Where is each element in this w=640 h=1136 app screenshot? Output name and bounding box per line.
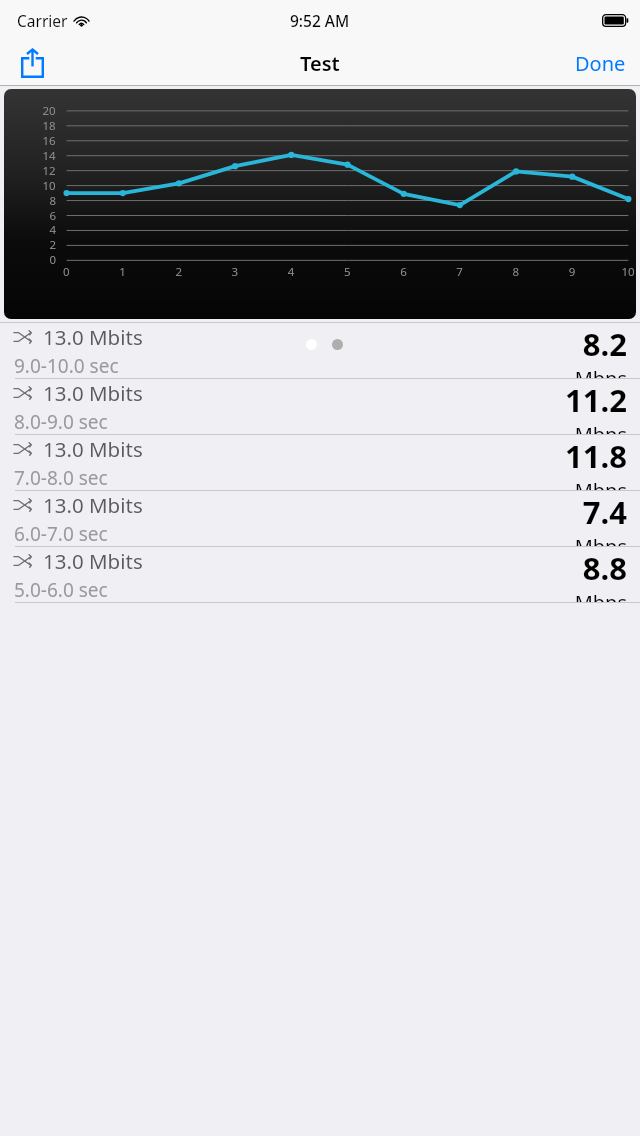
button[interactable]: 13.0 Mbits <box>0 379 640 434</box>
staticText: Mbps <box>574 533 627 546</box>
staticText: 13.0 Mbits <box>43 491 143 519</box>
button[interactable]: 13.0 Mbits <box>0 491 640 546</box>
staticText: 9:52 AM <box>290 10 350 31</box>
staticText: Carrier <box>17 10 68 31</box>
staticText: 9.0-10.0 sec <box>14 353 119 378</box>
staticText: 13.0 Mbits <box>43 547 143 575</box>
staticText: 7.4 <box>582 491 627 533</box>
staticText: 8.8 <box>582 547 627 589</box>
staticText: 6.0-7.0 sec <box>14 521 108 546</box>
button[interactable]: Share <box>10 41 54 85</box>
staticText: Test <box>300 50 340 77</box>
staticText: Mbps <box>574 477 627 490</box>
button[interactable]: 13.0 Mbits <box>0 323 640 378</box>
staticText: Done <box>575 50 626 77</box>
staticText: 13.0 Mbits <box>43 323 143 351</box>
button[interactable]: Done <box>569 44 632 83</box>
staticText: Mbps <box>574 421 627 434</box>
button[interactable] <box>4 89 636 319</box>
button[interactable]: 13.0 Mbits <box>0 435 640 490</box>
staticText: 8.0-9.0 sec <box>14 409 108 434</box>
staticText: 5.0-6.0 sec <box>14 577 108 602</box>
staticText: 13.0 Mbits <box>43 435 143 463</box>
staticText: Mbps <box>574 365 627 378</box>
staticText: 13.0 Mbits <box>43 379 143 407</box>
staticText: 11.2 <box>565 379 627 421</box>
button[interactable]: 13.0 Mbits <box>0 547 640 602</box>
staticText: 7.0-8.0 sec <box>14 465 108 490</box>
staticText: Mbps <box>574 589 627 602</box>
staticText: 8.2 <box>582 323 627 365</box>
staticText: 11.8 <box>565 435 627 477</box>
